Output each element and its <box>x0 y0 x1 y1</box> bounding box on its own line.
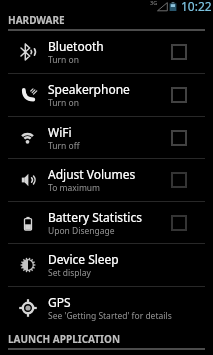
button[interactable]: Speakerphone <box>0 74 213 116</box>
button[interactable]: GPS <box>0 287 213 328</box>
staticText: Set display <box>48 267 91 279</box>
button[interactable]: Bluetooth <box>0 31 213 73</box>
button[interactable]: Adjust Volumes <box>0 159 213 201</box>
staticText: Bluetooth <box>48 38 104 54</box>
button[interactable]: WiFi <box>0 117 213 158</box>
button[interactable]: Device Sleep <box>0 244 213 286</box>
staticText: Turn off <box>48 140 80 152</box>
staticText: WiFi <box>48 124 72 140</box>
staticText: Adjust Volumes <box>48 166 136 182</box>
staticText: LAUNCH APPLICATION <box>8 332 121 346</box>
staticText: Speakerphone <box>48 81 130 97</box>
staticText: To maximum <box>48 182 101 194</box>
staticText: Turn on <box>48 54 79 66</box>
staticText: See 'Getting Started' for details <box>48 310 172 322</box>
staticText: Battery Statistics <box>48 209 142 225</box>
staticText: Turn on <box>48 97 79 109</box>
staticText: 3G <box>150 0 158 6</box>
staticText: HARDWARE <box>8 13 65 27</box>
staticText: Upon Disengage <box>48 225 115 237</box>
button[interactable]: Battery Statistics <box>0 202 213 243</box>
staticText: 10:22 <box>181 0 212 11</box>
staticText: Device Sleep <box>48 251 119 267</box>
staticText: GPS <box>48 294 71 310</box>
